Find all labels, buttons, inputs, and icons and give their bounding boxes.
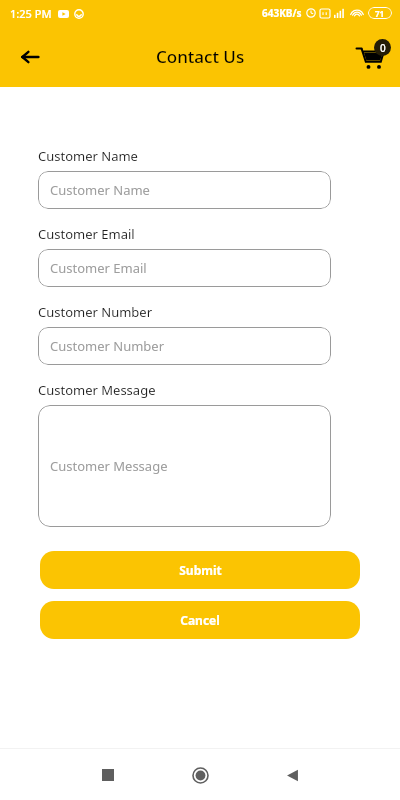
staticText: 643KB/s <box>262 6 302 20</box>
staticText: Customer Number <box>50 337 165 355</box>
staticText: 1:25 PM <box>10 6 52 21</box>
staticText: 71 <box>375 8 385 19</box>
staticText: Customer Email <box>38 225 135 243</box>
staticText: Customer Name <box>50 181 150 199</box>
button[interactable]: Customer Name <box>38 171 331 209</box>
staticText: Submit <box>179 562 222 578</box>
staticText: Contact Us <box>156 45 245 68</box>
staticText: Cancel <box>180 612 220 628</box>
button[interactable]: Cancel <box>40 601 360 639</box>
staticText: Customer Number <box>38 303 153 321</box>
button[interactable]: Customer Number <box>38 327 331 365</box>
staticText: Customer Email <box>50 259 147 277</box>
button[interactable]: Back <box>10 37 50 77</box>
button[interactable]: Back <box>272 755 312 795</box>
staticText: Customer Message <box>38 381 156 399</box>
button[interactable]: Customer Email <box>38 249 331 287</box>
button[interactable]: Submit <box>40 551 360 589</box>
staticText: 0 <box>380 41 386 55</box>
button[interactable]: Recent apps <box>88 755 128 795</box>
staticText: Customer Name <box>38 147 138 165</box>
staticText: Customer Message <box>50 457 168 475</box>
button[interactable]: Home <box>180 755 220 795</box>
button[interactable]: Customer Message <box>38 405 331 527</box>
button[interactable]: Cart <box>348 35 392 79</box>
